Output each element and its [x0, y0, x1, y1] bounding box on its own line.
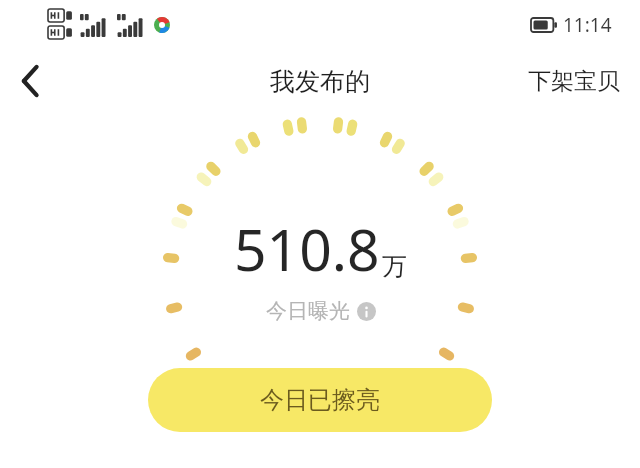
button[interactable]: 今日曝光: [262, 296, 380, 326]
staticText: 今日已擦亮: [260, 385, 380, 415]
staticText: 下架宝贝: [528, 67, 620, 96]
staticText: 今日曝光: [266, 298, 350, 324]
button[interactable]: 今日已擦亮: [148, 368, 492, 432]
staticText: 11:14: [563, 12, 612, 38]
staticText: 510.8: [234, 210, 380, 288]
button[interactable]: 下架宝贝: [522, 59, 626, 104]
staticText: 万: [382, 251, 407, 282]
other: Info: [357, 302, 376, 321]
staticText: 我发布的: [270, 66, 370, 97]
button[interactable]: Back: [0, 51, 60, 111]
